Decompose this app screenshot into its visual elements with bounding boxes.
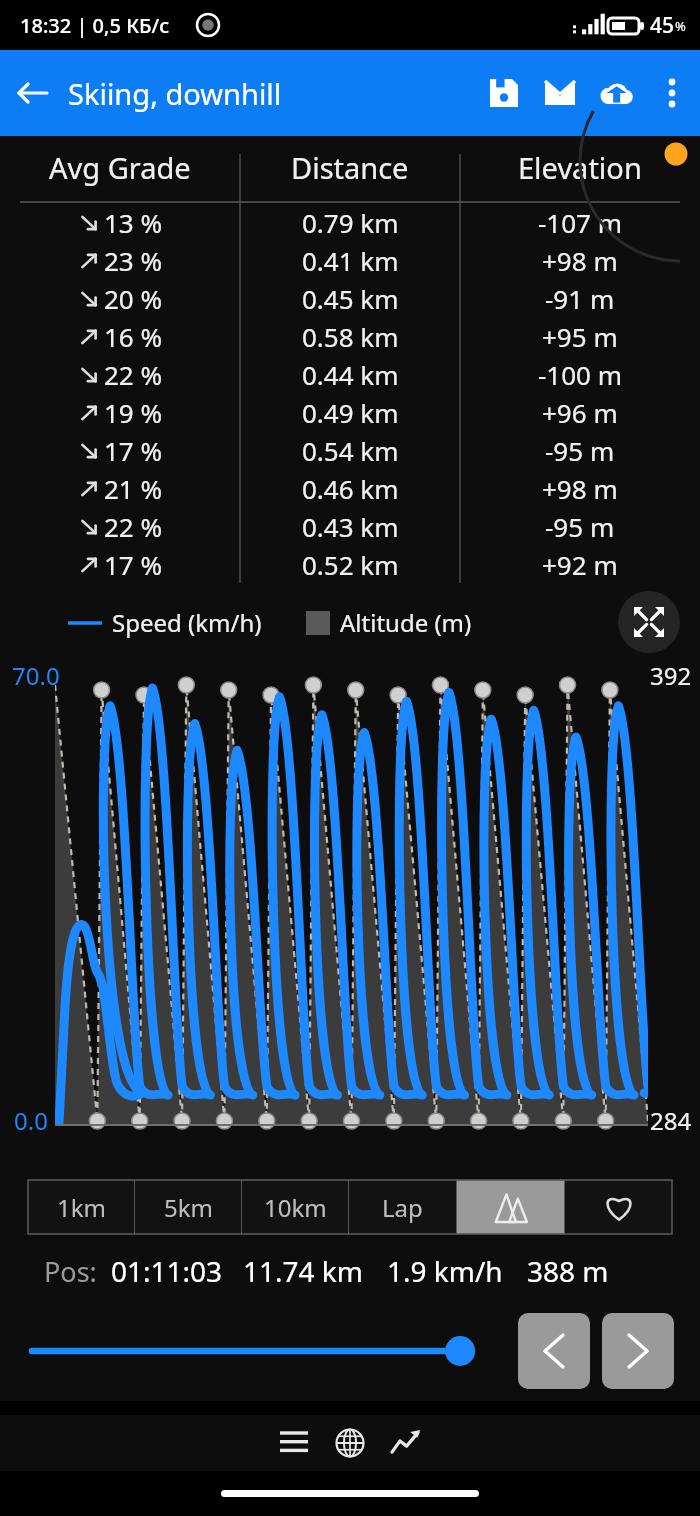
staticText: 284	[650, 1104, 692, 1137]
staticText: 392	[650, 659, 692, 692]
staticText: 11.74 km	[243, 1252, 363, 1290]
staticText: 22 %	[104, 509, 163, 544]
staticText: -91 m	[545, 281, 615, 316]
button[interactable]: Lap	[349, 1180, 456, 1234]
staticText: Elevation	[518, 148, 642, 187]
staticText: 21 %	[104, 471, 163, 506]
button[interactable]: Next	[602, 1313, 674, 1389]
staticText: 17 %	[104, 547, 163, 582]
staticText: 19 %	[104, 395, 163, 430]
staticText: 0.0	[14, 1104, 48, 1137]
button[interactable]: Position slider	[30, 1323, 490, 1379]
staticText: -107 m	[538, 205, 623, 240]
staticText: 0.79 km	[302, 205, 399, 240]
staticText: -95 m	[545, 509, 615, 544]
staticText: +98 m	[542, 243, 618, 278]
staticText: 0.54 km	[302, 433, 399, 468]
button[interactable]: Statistics	[382, 1419, 430, 1467]
staticText: 18:32 | 0,5 КБ/с	[20, 12, 170, 39]
staticText: 16 %	[104, 319, 163, 354]
staticText: 20 %	[104, 281, 163, 316]
staticText: 13 %	[104, 205, 163, 240]
staticText: Speed (km/h)	[112, 606, 262, 639]
button[interactable]: More options	[644, 65, 700, 121]
button[interactable]: Email	[532, 65, 588, 121]
staticText: 0.43 km	[302, 509, 399, 544]
staticText: %	[675, 17, 686, 35]
staticText: 0.58 km	[302, 319, 399, 354]
staticText: Lap	[382, 1191, 423, 1224]
staticText: +92 m	[542, 547, 618, 582]
staticText: 17 %	[104, 433, 163, 468]
staticText: Altitude (m)	[340, 606, 472, 639]
button[interactable]: 10km	[242, 1180, 348, 1234]
staticText: 22 %	[104, 357, 163, 392]
staticText: 0.44 km	[302, 357, 399, 392]
button[interactable]: Previous	[518, 1313, 590, 1389]
button[interactable]: Map	[326, 1419, 374, 1467]
staticText: 1.9 km/h	[387, 1252, 503, 1290]
staticText: -100 m	[538, 357, 623, 392]
staticText: 0.46 km	[302, 471, 399, 506]
staticText: 23 %	[104, 243, 163, 278]
staticText: 5km	[164, 1191, 213, 1224]
staticText: Skiing, downhill	[68, 74, 476, 113]
staticText: Distance	[291, 148, 409, 187]
staticText: Avg Grade	[49, 148, 191, 187]
staticText: 0.41 km	[302, 243, 399, 278]
staticText: 0.45 km	[302, 281, 399, 316]
staticText: 0.52 km	[302, 547, 399, 582]
button[interactable]: Fullscreen	[618, 591, 680, 653]
button[interactable]: Heart rate chart	[565, 1180, 672, 1234]
staticText: 1km	[57, 1191, 106, 1224]
button[interactable]: Save	[476, 65, 532, 121]
staticText: 10km	[264, 1191, 327, 1224]
staticText: 01:11:03	[111, 1252, 223, 1290]
staticText: +98 m	[542, 471, 618, 506]
staticText: +96 m	[542, 395, 618, 430]
staticText: 70.0	[12, 659, 60, 692]
button[interactable]: Back	[0, 61, 64, 125]
staticText: 388 m	[527, 1252, 609, 1290]
button[interactable]: Elevation chart	[457, 1180, 564, 1234]
staticText: 0.49 km	[302, 395, 399, 430]
button[interactable]: 5km	[135, 1180, 241, 1234]
staticText: 45	[650, 11, 675, 40]
button[interactable]: List	[270, 1419, 318, 1467]
staticText: -95 m	[545, 433, 615, 468]
button[interactable]: 1km	[28, 1180, 134, 1234]
button[interactable]: Upload	[588, 65, 644, 121]
staticText: Pos:	[44, 1253, 97, 1290]
staticText: +95 m	[542, 319, 618, 354]
